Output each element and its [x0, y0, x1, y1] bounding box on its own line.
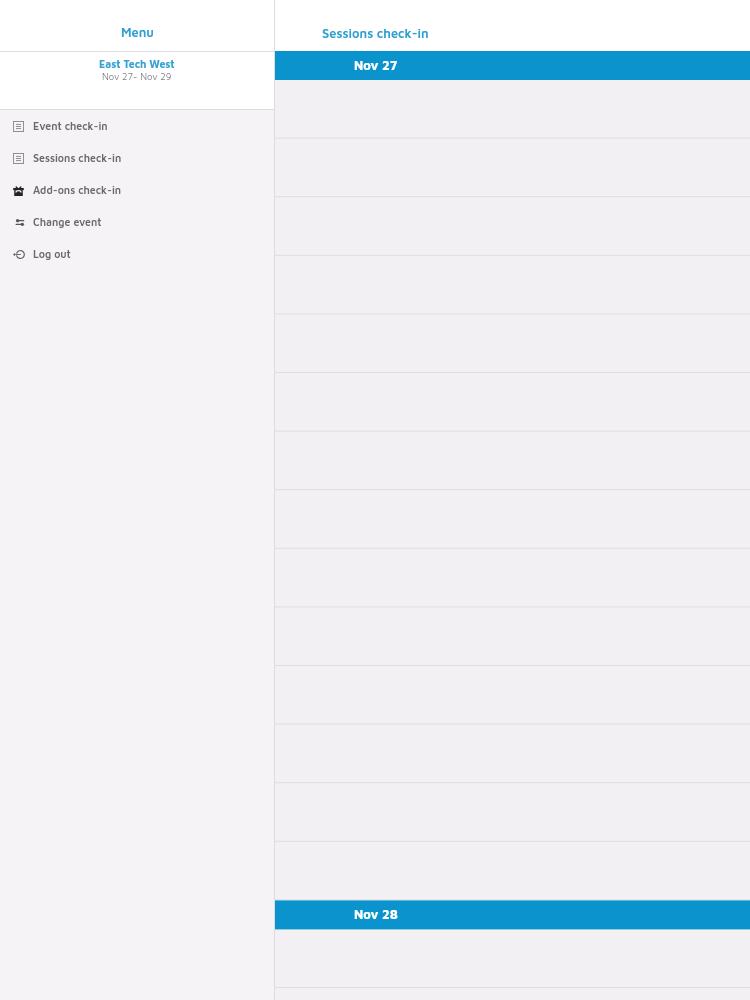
staticText: Sessions check-in — [322, 26, 429, 41]
staticText: Add-ons check-in — [33, 184, 122, 196]
button[interactable]: Nov 27 — [275, 51, 750, 80]
button[interactable]: Sessions check-in — [0, 142, 274, 174]
staticText: Sessions check-in — [33, 152, 122, 164]
staticText: Change event — [33, 216, 102, 228]
staticText: Nov 28 — [354, 907, 398, 922]
staticText: East Tech West — [99, 58, 175, 70]
button[interactable]: Nov 28 — [275, 900, 750, 929]
button[interactable] — [275, 842, 750, 901]
staticText: Menu — [121, 25, 154, 40]
button[interactable] — [275, 929, 750, 988]
button[interactable]: Change event — [0, 206, 274, 238]
staticText: Event check-in — [33, 120, 108, 132]
staticText: Nov 27 — [354, 58, 398, 73]
button[interactable]: Log out — [0, 238, 274, 270]
button[interactable]: East Tech West — [0, 52, 274, 109]
staticText: Log out — [33, 248, 71, 260]
button[interactable]: Add-ons check-in — [0, 174, 274, 206]
staticText: Nov 27- Nov 29 — [102, 71, 172, 82]
button[interactable]: Event check-in — [0, 110, 274, 142]
